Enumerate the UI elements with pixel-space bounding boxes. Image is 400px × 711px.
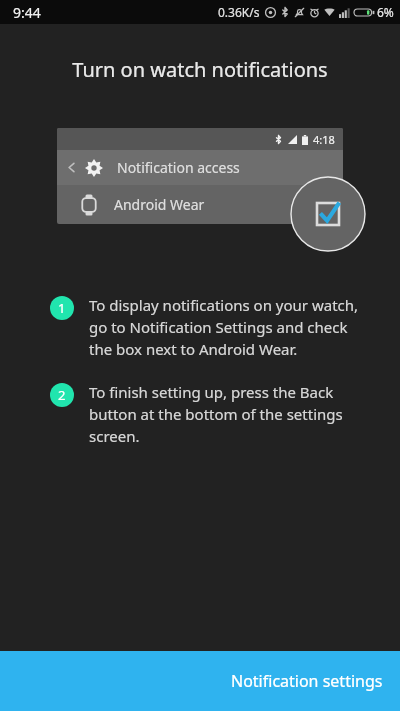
staticText: 1 — [58, 299, 66, 317]
staticText: Android Wear — [114, 195, 205, 214]
staticText: 4:18 — [313, 132, 335, 147]
button[interactable]: Notification settings — [0, 651, 400, 711]
staticText: 0.36K/s — [218, 4, 260, 20]
staticText: Notification access — [117, 158, 240, 177]
staticText: To display notifications on your watch, … — [89, 295, 362, 360]
button[interactable]: 2 — [50, 383, 362, 448]
staticText: 2 — [58, 386, 66, 404]
staticText: To finish setting up, press the Back but… — [89, 382, 362, 447]
staticText: 6% — [377, 4, 394, 20]
button[interactable]: 1 — [50, 296, 362, 361]
staticText: Notification settings — [231, 670, 383, 692]
staticText: Turn on watch notifications — [0, 56, 400, 83]
staticText: 9:44 — [13, 3, 41, 22]
other: Back — [66, 162, 77, 173]
